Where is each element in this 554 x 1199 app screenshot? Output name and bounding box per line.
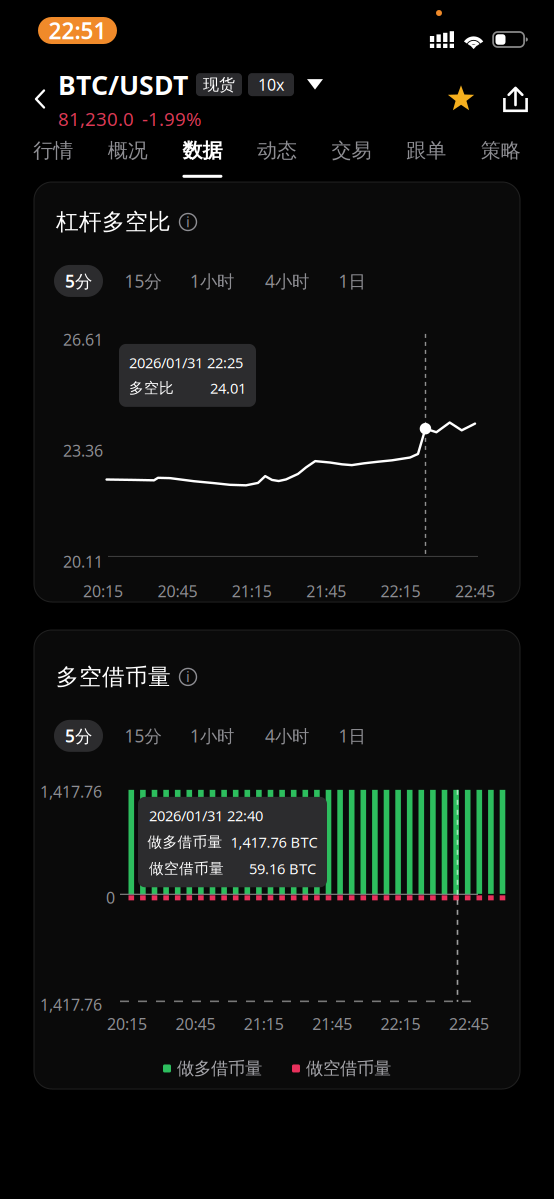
staticText: 10x: [258, 74, 284, 95]
staticText: 21:15: [244, 1013, 284, 1034]
staticText: 22:51: [48, 15, 106, 45]
staticText: 21:45: [312, 1013, 352, 1034]
staticText: 20:15: [83, 580, 123, 601]
button[interactable]: 1日: [333, 265, 371, 297]
button[interactable]: Back: [22, 73, 58, 125]
button[interactable]: Switch market: [301, 72, 329, 98]
button[interactable]: 策略: [463, 130, 538, 182]
staticText: -1.99%: [142, 106, 202, 131]
staticText: 跟单: [406, 138, 446, 163]
staticText: 交易: [332, 138, 372, 163]
button[interactable]: 1小时: [183, 720, 241, 752]
staticText: 20.11: [63, 551, 103, 572]
button[interactable]: 跟单: [389, 130, 463, 182]
button[interactable]: 1日: [333, 720, 371, 752]
staticText: 22:45: [455, 580, 495, 601]
staticText: 24.01: [210, 378, 246, 398]
staticText: 4小时: [265, 724, 309, 747]
staticText: 59.16 BTC: [249, 859, 316, 878]
staticText: 多空借币量: [56, 663, 171, 691]
button[interactable]: Favorite: [447, 85, 475, 112]
staticText: 现货: [203, 75, 235, 94]
staticText: 概况: [108, 138, 148, 163]
button[interactable]: 动态: [240, 130, 314, 182]
staticText: 20:45: [157, 580, 197, 601]
staticText: 20:45: [175, 1013, 215, 1034]
staticText: 5分: [65, 724, 92, 747]
button[interactable]: 4小时: [258, 265, 316, 297]
staticText: BTC/USDT: [58, 67, 188, 102]
staticText: 策略: [481, 138, 521, 163]
staticText: 1小时: [190, 724, 234, 747]
staticText: 1,417.76 BTC: [230, 832, 317, 852]
staticText: 26.61: [63, 329, 103, 350]
button[interactable]: 行情: [16, 130, 91, 182]
button[interactable]: 5分: [54, 720, 103, 752]
staticText: 15分: [124, 269, 161, 292]
staticText: i: [186, 667, 190, 686]
staticText: 多空比: [129, 379, 174, 397]
staticText: 做多借币量: [177, 1058, 262, 1079]
staticText: 4小时: [265, 269, 309, 292]
staticText: 1日: [338, 724, 365, 747]
staticText: 5分: [65, 269, 92, 292]
staticText: 22:45: [449, 1013, 489, 1034]
staticText: 21:45: [306, 580, 346, 601]
staticText: 22:15: [381, 1013, 421, 1034]
staticText: 行情: [33, 138, 73, 163]
staticText: 做多借币量: [147, 833, 222, 851]
button[interactable]: 数据: [165, 130, 240, 182]
staticText: 20:15: [107, 1013, 147, 1034]
button[interactable]: 4小时: [258, 720, 316, 752]
staticText: 0: [106, 887, 115, 908]
staticText: 2026/01/31 22:40: [149, 806, 263, 825]
button[interactable]: 5分: [54, 265, 103, 297]
staticText: i: [186, 212, 190, 231]
button[interactable]: 15分: [120, 720, 166, 752]
staticText: 数据: [182, 138, 222, 163]
staticText: 1小时: [190, 269, 234, 292]
staticText: 15分: [124, 724, 161, 747]
staticText: 81,230.0: [58, 106, 134, 131]
staticText: 1,417.76: [40, 781, 102, 802]
staticText: 动态: [257, 138, 297, 163]
staticText: 杠杆多空比: [56, 208, 171, 236]
button[interactable]: 1小时: [183, 265, 241, 297]
staticText: 1日: [338, 269, 365, 292]
button[interactable]: 交易: [314, 130, 389, 182]
staticText: 21:15: [232, 580, 272, 601]
staticText: 做空借币量: [306, 1058, 391, 1079]
button[interactable]: 概况: [91, 130, 165, 182]
staticText: 23.36: [63, 440, 103, 461]
staticText: 做空借币量: [149, 859, 224, 877]
button[interactable]: 15分: [120, 265, 166, 297]
staticText: 1,417.76: [40, 994, 102, 1015]
staticText: 2026/01/31 22:25: [129, 353, 243, 372]
staticText: 22:15: [381, 580, 421, 601]
button[interactable]: Share: [503, 86, 528, 112]
